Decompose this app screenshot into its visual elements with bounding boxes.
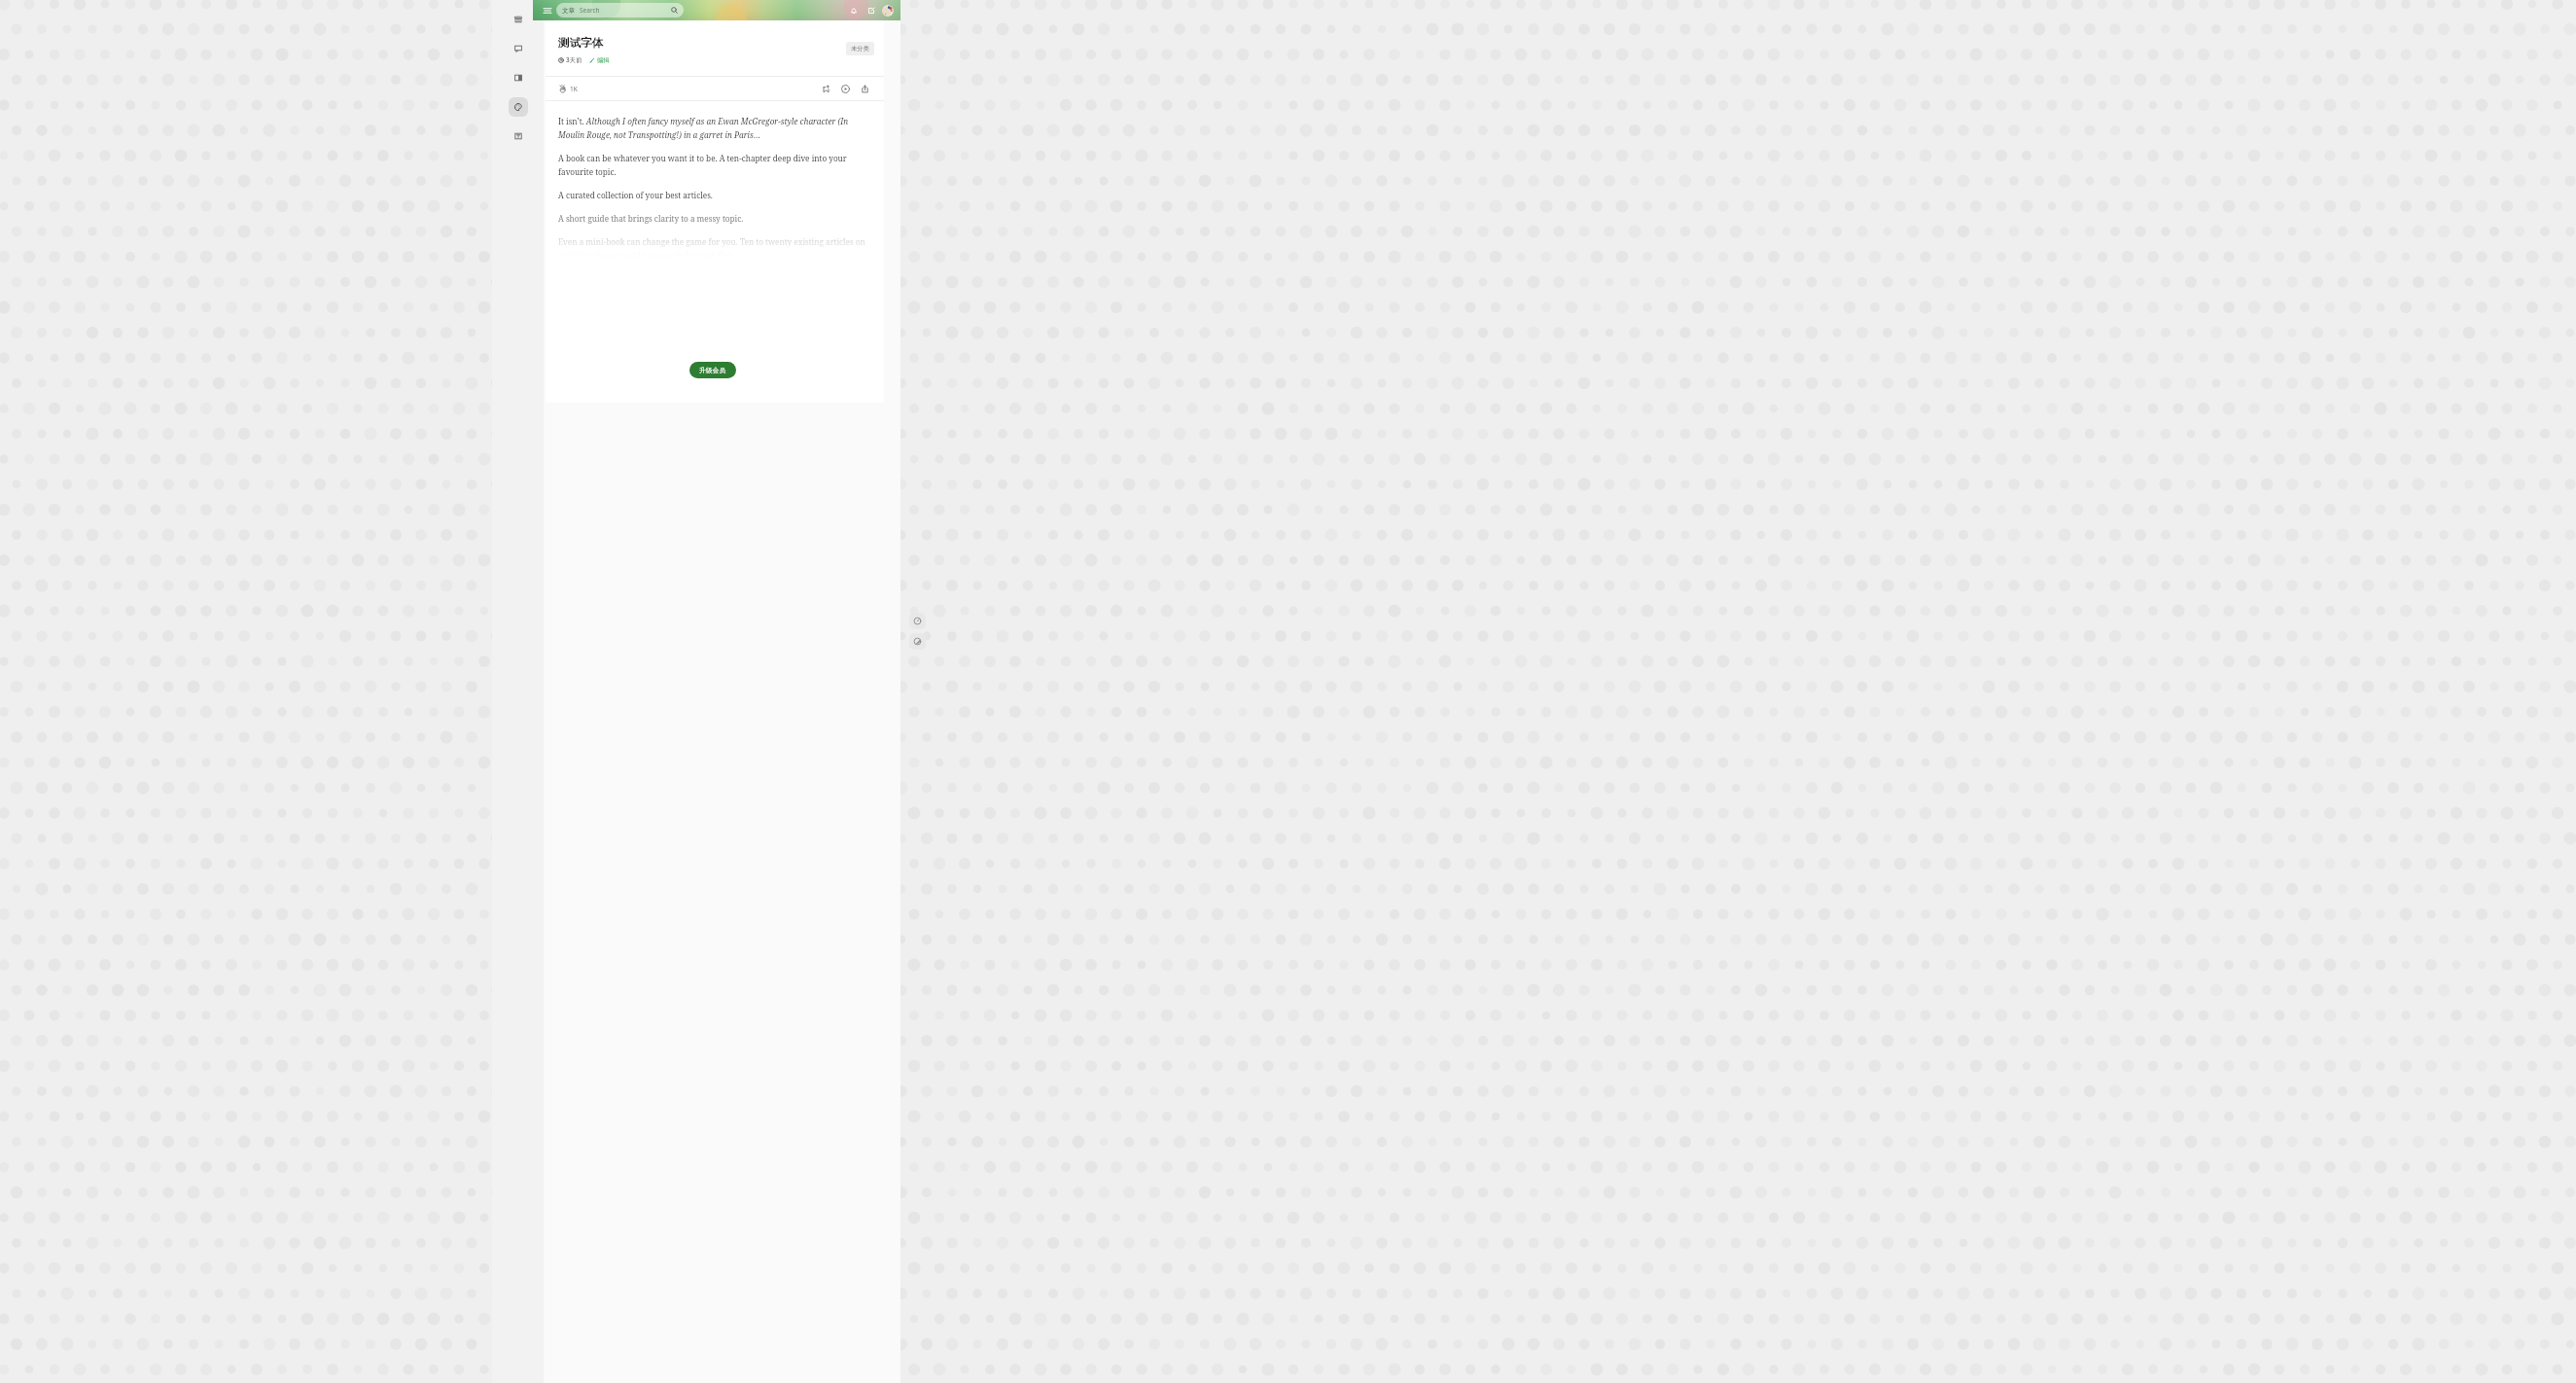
button[interactable]: 编辑 bbox=[589, 56, 610, 64]
staticText: A curated collection of your best articl… bbox=[558, 190, 713, 200]
staticText: 编辑 bbox=[597, 56, 610, 64]
button[interactable]: Toggle dark mode bbox=[909, 633, 926, 650]
staticText: A short guide that brings clarity to a m… bbox=[558, 213, 744, 224]
button[interactable]: 文章 bbox=[556, 3, 684, 18]
button[interactable]: 1K bbox=[557, 83, 579, 95]
staticText: Search bbox=[580, 6, 600, 15]
button[interactable]: Listen bbox=[838, 82, 853, 96]
staticText: A book can be whatever you want it to be… bbox=[558, 153, 870, 177]
button[interactable]: Reading settings bbox=[909, 613, 926, 629]
button[interactable]: Notifications bbox=[847, 4, 861, 18]
button[interactable]: 升级会员 bbox=[689, 362, 736, 378]
button[interactable]: Messages bbox=[509, 39, 528, 58]
button[interactable]: Layout bbox=[509, 68, 528, 88]
staticText: It isn’t. Although I often fancy myself … bbox=[558, 116, 870, 140]
button[interactable]: Share bbox=[858, 82, 872, 96]
staticText: Even a mini-book can change the game for… bbox=[558, 236, 870, 261]
staticText: 未分类 bbox=[851, 45, 869, 53]
button[interactable]: Appearance bbox=[509, 97, 528, 117]
button[interactable]: Store bbox=[509, 10, 528, 29]
button[interactable]: Typography bbox=[509, 126, 528, 146]
staticText: 1K bbox=[570, 85, 578, 93]
staticText: 3天前 bbox=[566, 55, 582, 64]
staticText: 测试字体 bbox=[558, 36, 603, 50]
staticText: 文章 bbox=[562, 7, 575, 15]
button[interactable]: Write bbox=[865, 4, 878, 18]
button[interactable]: Save bbox=[819, 82, 833, 96]
button[interactable]: Menu bbox=[541, 4, 553, 17]
button[interactable]: 未分类 bbox=[846, 42, 874, 55]
button[interactable]: Profile bbox=[882, 5, 894, 17]
staticText: 升级会员 bbox=[699, 366, 726, 374]
